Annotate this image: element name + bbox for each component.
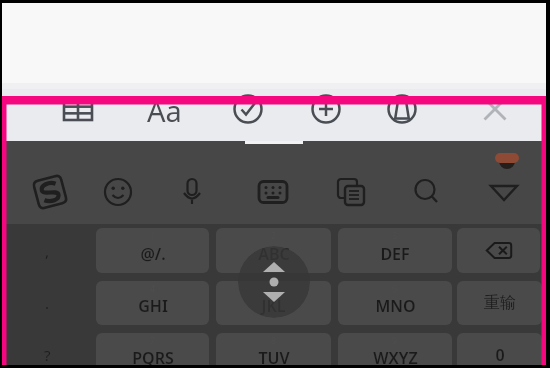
button[interactable]: 8 (216, 333, 331, 368)
button[interactable]: 2 (216, 228, 331, 273)
button[interactable]: Check (224, 85, 272, 133)
staticText: . (45, 293, 50, 313)
button[interactable]: Close (471, 85, 519, 133)
staticText: 5 (271, 282, 277, 294)
button[interactable]: Emoji (96, 170, 140, 214)
button[interactable]: Account (378, 85, 426, 133)
staticText: 0 (495, 344, 505, 366)
button[interactable]: 6 (338, 281, 452, 325)
button[interactable]: Cursor control (238, 246, 310, 318)
staticText: ? (44, 345, 51, 365)
staticText: , (45, 241, 50, 261)
staticText: JKL (261, 295, 286, 317)
staticText: @/. (140, 243, 166, 265)
staticText: MNO (375, 295, 416, 317)
staticText: TUV (258, 347, 290, 368)
button[interactable]: Table (54, 86, 102, 134)
staticText: GHI (138, 295, 168, 317)
button[interactable]: 9 (338, 333, 452, 368)
staticText: Aa (147, 91, 182, 130)
staticText: DEF (380, 243, 410, 265)
button[interactable]: ? (5, 329, 90, 368)
button[interactable]: 0 (457, 333, 542, 368)
button[interactable]: . (5, 277, 90, 329)
button[interactable]: 7 (96, 333, 209, 368)
button[interactable]: Backspace (457, 228, 540, 273)
button[interactable]: Voice input (170, 170, 214, 214)
button[interactable]: 1 (96, 228, 209, 273)
button[interactable]: 5 (216, 281, 331, 325)
button[interactable]: Clipboard (329, 170, 373, 214)
button[interactable]: , (5, 224, 90, 277)
staticText: 重输 (484, 293, 516, 313)
button[interactable]: 重输 (457, 281, 542, 325)
staticText: WXYZ (373, 347, 418, 368)
button[interactable]: Hide keyboard (482, 170, 526, 214)
button[interactable]: 3 (338, 228, 452, 273)
staticText: PQRS (132, 347, 174, 368)
button[interactable]: Sogou keyboard (28, 170, 72, 214)
button[interactable]: Add (302, 85, 350, 133)
button[interactable]: Search (405, 170, 449, 214)
staticText: ABC (258, 243, 290, 265)
button[interactable]: 4 (96, 281, 209, 325)
button[interactable]: Text formatting (140, 86, 188, 134)
button[interactable]: Keyboard layout (251, 170, 295, 214)
